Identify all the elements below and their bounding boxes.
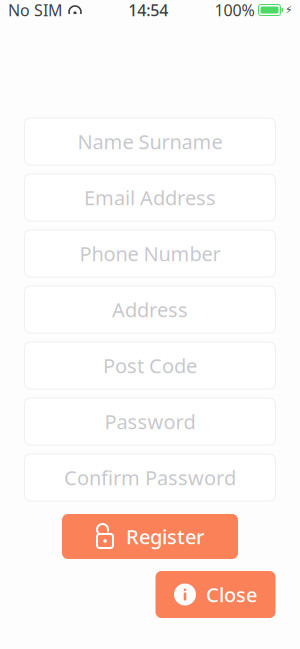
- staticText: Address: [112, 296, 188, 323]
- staticText: No SIM: [8, 0, 63, 21]
- staticText: Close: [206, 581, 257, 608]
- button[interactable]: Name Surname: [24, 118, 275, 165]
- staticText: Post Code: [103, 352, 197, 379]
- staticText: Name Surname: [77, 128, 222, 155]
- button[interactable]: Post Code: [24, 342, 275, 389]
- staticText: Password: [104, 408, 195, 435]
- button[interactable]: Close: [155, 571, 275, 618]
- button[interactable]: Confirm Password: [24, 454, 275, 501]
- staticText: 14:54: [128, 0, 168, 21]
- staticText: 100%: [214, 0, 254, 21]
- button[interactable]: Password: [24, 398, 275, 445]
- staticText: Phone Number: [79, 240, 220, 267]
- button[interactable]: Email Address: [24, 174, 275, 221]
- button[interactable]: Phone Number: [24, 230, 275, 277]
- staticText: ⚡︎: [285, 4, 292, 16]
- staticText: Register: [126, 523, 204, 550]
- staticText: Confirm Password: [64, 464, 236, 491]
- staticText: Email Address: [84, 184, 216, 211]
- button[interactable]: Register: [62, 514, 238, 559]
- button[interactable]: Address: [24, 286, 275, 333]
